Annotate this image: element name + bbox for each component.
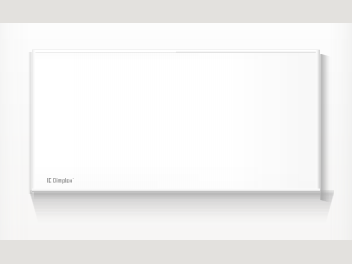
button[interactable]: Dimplex panel heater product photo [0,0,352,264]
